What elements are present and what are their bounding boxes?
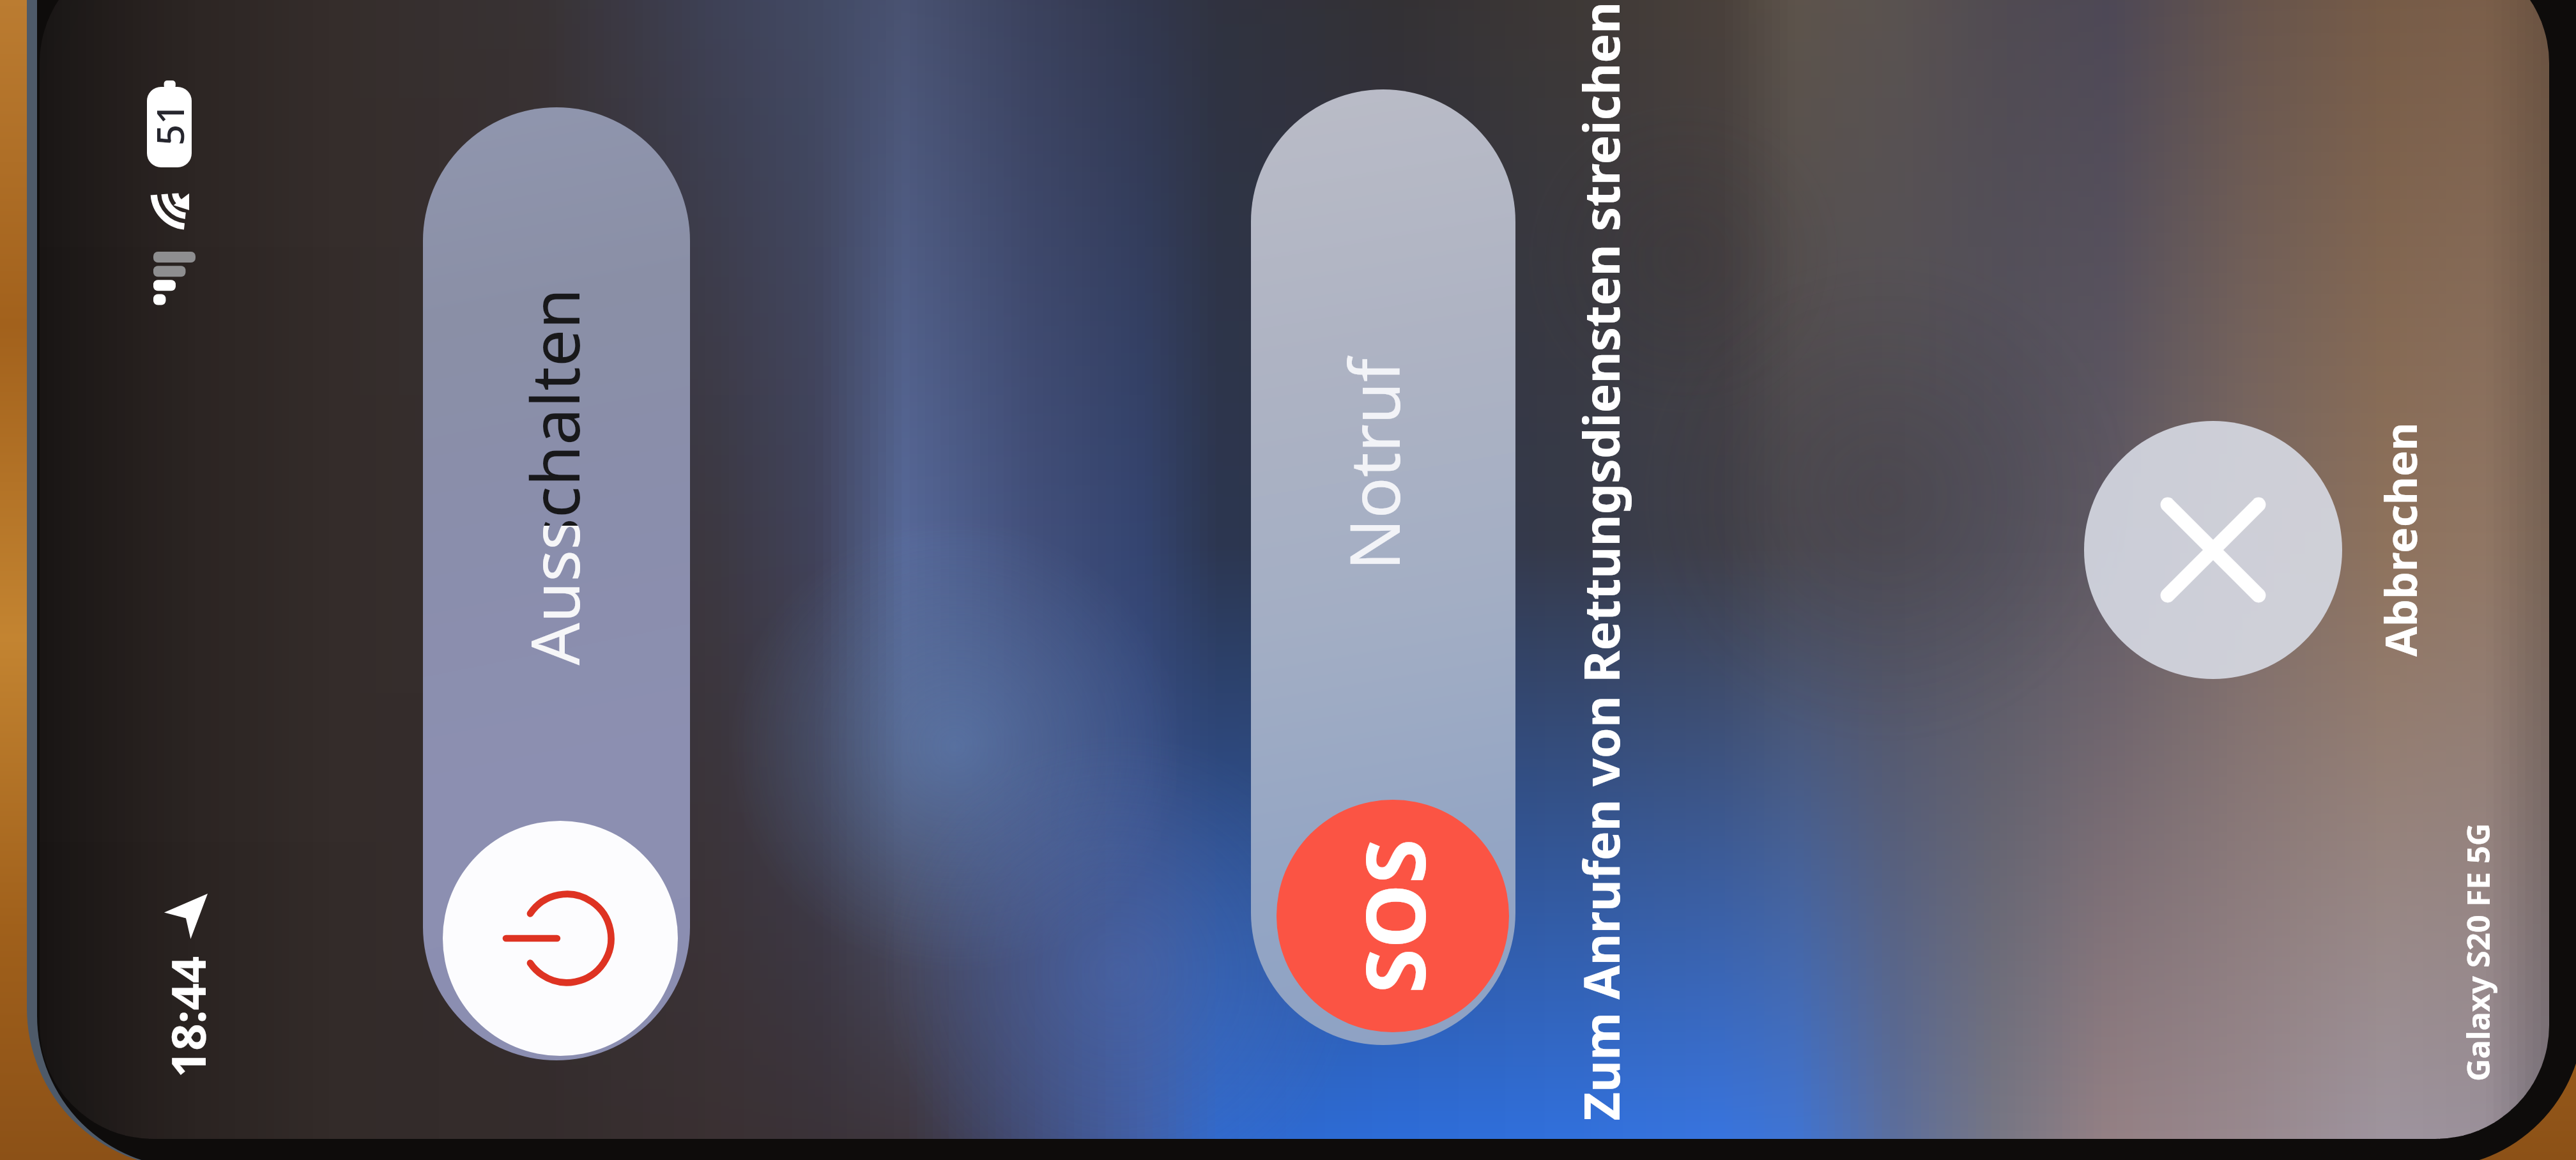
staticText: 18:44 (155, 956, 220, 1078)
staticText: SOS (1338, 838, 1449, 994)
button[interactable]: Ausschalten (423, 107, 690, 1060)
staticText: Galaxy S20 FE 5G (2457, 823, 2499, 1081)
staticText: 51 (144, 103, 195, 146)
staticText: Ausschalten (508, 288, 599, 526)
staticText: Zum Anrufen von Rettungsdiensten streich… (1567, 2, 1634, 1121)
button[interactable]: Notruf (1251, 89, 1515, 1045)
button[interactable]: Abbrechen (2084, 421, 2342, 679)
staticText: Notruf (1327, 358, 1420, 570)
staticText: Ausschalten (508, 526, 599, 665)
staticText: Abbrechen (2370, 422, 2430, 657)
button[interactable]: Ausschalten (443, 821, 678, 1056)
button[interactable]: Notruf SOS (1276, 800, 1509, 1032)
